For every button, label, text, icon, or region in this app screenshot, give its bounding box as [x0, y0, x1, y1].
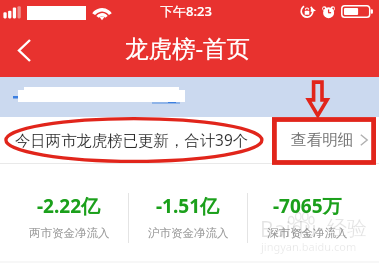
button[interactable]: 返回	[2, 28, 46, 72]
staticText: -7065万	[273, 193, 342, 219]
button[interactable]: -1.51亿	[129, 164, 247, 263]
other: 旋转锁定	[300, 4, 317, 19]
staticText: 龙虎榜-首页	[125, 32, 251, 64]
button[interactable]: -2.22亿	[10, 164, 128, 263]
button[interactable]: -7065万	[248, 164, 366, 263]
staticText: 深市资金净流入	[267, 226, 348, 240]
staticText: 经验	[327, 216, 367, 241]
staticText: 沪市资金净流入	[148, 226, 229, 240]
staticText: Baidu	[260, 215, 317, 244]
staticText: 下午8:23	[160, 2, 212, 20]
button[interactable]: 查看明细	[277, 117, 379, 163]
staticText: 两市资金净流入	[29, 226, 110, 240]
other: 闹钟	[321, 4, 336, 19]
staticText: jingyan.baidu.com	[261, 239, 357, 254]
staticText: -1.51亿	[156, 193, 220, 219]
staticText: 今日两市龙虎榜已更新，合计39个	[15, 130, 249, 151]
staticText: 查看明细	[291, 130, 354, 150]
button[interactable]: 今日两市龙虎榜已更新，合计39个	[0, 117, 258, 163]
staticText: -2.22亿	[37, 193, 101, 219]
